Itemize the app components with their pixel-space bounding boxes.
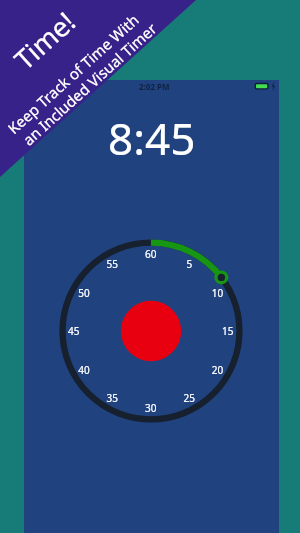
staticText: 8:45 bbox=[108, 108, 196, 168]
button[interactable] bbox=[51, 231, 251, 431]
staticText: 2:02 PM bbox=[139, 81, 170, 92]
other: Battery charging bbox=[253, 82, 277, 94]
